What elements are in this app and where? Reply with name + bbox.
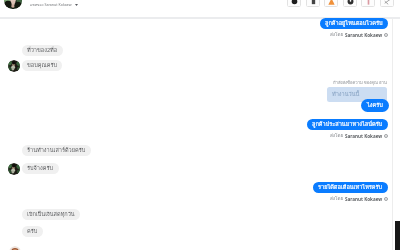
staticText: ทำงานวันนี้ — [332, 90, 360, 99]
button[interactable]: ที่ว่าของ2ที่อ — [22, 45, 63, 56]
staticText: กำลังส่งข้อความ ของคุณ อ่าน — [333, 79, 387, 86]
staticText: ขอบคุณครับ — [27, 61, 57, 70]
button[interactable]: ไงครับ — [361, 99, 389, 112]
button[interactable]: ส่งโดย — [330, 31, 388, 38]
staticText: ไงครับ — [367, 101, 383, 110]
staticText: รายได้ต่อเดือนเท่าไหร่ครับ — [318, 183, 383, 192]
button[interactable]: ส่งโดย — [330, 195, 388, 202]
button[interactable]: รายได้ต่อเดือนเท่าไหร่ครับ — [313, 182, 388, 193]
staticText: Saranut Kokaew — [345, 133, 383, 139]
button[interactable]: Extensions — [306, 0, 320, 7]
staticText: เบิกเป็นเงินสดทุกวัน — [27, 210, 75, 219]
staticText: ที่ว่าของ2ที่อ — [27, 46, 58, 55]
button[interactable]: ลูกค้าประสานมาทางไลน์ครับ — [307, 119, 388, 130]
staticText: ลูกค้าประสานมาทางไลน์ครับ — [312, 120, 383, 129]
button[interactable]: ลูกค้าอยู่ไหนตอบไวครับ — [320, 18, 388, 29]
button[interactable]: Downloads — [287, 0, 301, 7]
button[interactable]: ขอบคุณครับ — [22, 60, 62, 71]
button[interactable]: Account — [343, 0, 357, 7]
staticText: ร้านทำงานเสาร์ด้วยครับ — [27, 146, 86, 155]
button[interactable]: Reading list — [361, 0, 375, 7]
staticText: ส่งโดย — [330, 132, 345, 139]
button[interactable]: Bookmarks — [324, 0, 338, 7]
button[interactable]: ทำงานวันนี้ — [327, 87, 387, 102]
button[interactable]: แชทของ Saranut Kokaew — [0, 0, 400, 17]
button[interactable]: เบิกเป็นเงินสดทุกวัน — [22, 209, 80, 220]
staticText: แชทของ Saranut Kokaew — [30, 2, 72, 8]
staticText: ส่งโดย — [330, 195, 345, 202]
button[interactable]: รับจ้างครับ — [22, 163, 59, 174]
staticText: รับจ้างครับ — [27, 164, 54, 173]
button[interactable]: ร้านทำงานเสาร์ด้วยครับ — [22, 145, 91, 156]
staticText: ครับ — [27, 227, 38, 236]
button[interactable]: Edit — [380, 0, 394, 7]
button[interactable]: ครับ — [22, 226, 43, 237]
staticText: ส่งโดย — [330, 31, 345, 38]
staticText: ลูกค้าอยู่ไหนตอบไวครับ — [325, 19, 383, 28]
staticText: Saranut Kokaew — [345, 196, 383, 202]
staticText: Saranut Kokaew — [345, 32, 383, 38]
button[interactable]: ส่งโดย — [330, 132, 388, 139]
